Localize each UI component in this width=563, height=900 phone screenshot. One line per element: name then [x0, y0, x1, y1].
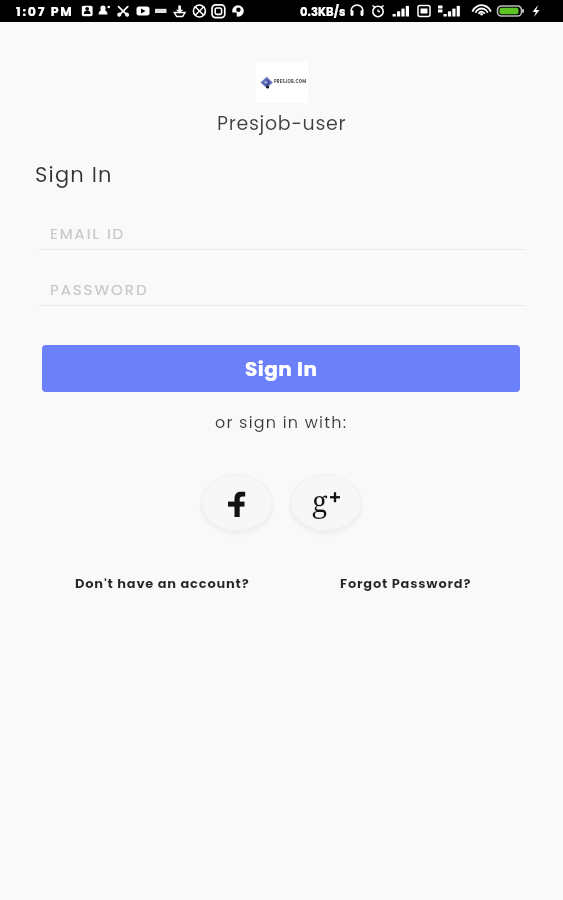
staticText: PRESJOB.COM: [274, 79, 307, 85]
staticText: Sign In: [245, 355, 318, 383]
button[interactable]: Sign In: [42, 345, 520, 392]
staticText: Forgot Password?: [340, 574, 472, 592]
button[interactable]: Sign in with Facebook: [199, 471, 275, 535]
button[interactable]: Sign in with Google Plus: [288, 471, 364, 535]
staticText: Don't have an account?: [75, 574, 250, 592]
staticText: PASSWORD: [50, 279, 149, 300]
staticText: EMAIL ID: [50, 223, 126, 244]
staticText: g: [312, 481, 328, 520]
button[interactable]: Don't have an account?: [75, 570, 250, 596]
staticText: 0.3KB/s: [300, 4, 346, 20]
staticText: 1:07 PM: [16, 3, 74, 20]
button[interactable]: Forgot Password?: [340, 570, 472, 596]
staticText: Presjob-user: [217, 110, 347, 137]
staticText: or sign in with:: [215, 411, 348, 433]
staticText: Sign In: [35, 160, 113, 189]
